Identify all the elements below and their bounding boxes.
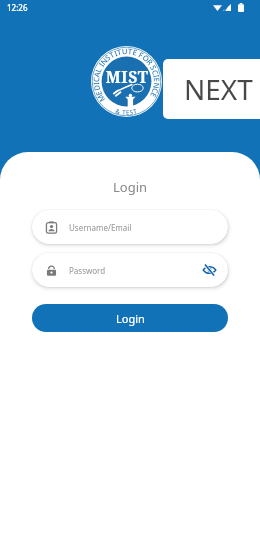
staticText: Login: [0, 178, 260, 196]
button[interactable]: Login: [32, 304, 228, 332]
button[interactable]: Username/Email: [32, 210, 228, 244]
button[interactable]: NEXT: [163, 59, 260, 119]
staticText: Password: [69, 265, 106, 276]
staticText: Login: [116, 311, 145, 326]
staticText: Username/Email: [69, 222, 132, 233]
staticText: 12:26: [7, 2, 28, 13]
staticText: NEXT: [184, 70, 253, 108]
button[interactable]: Password: [32, 253, 228, 287]
button[interactable]: Toggle password visibility: [201, 262, 217, 278]
other: MIST logo: [91, 46, 162, 117]
